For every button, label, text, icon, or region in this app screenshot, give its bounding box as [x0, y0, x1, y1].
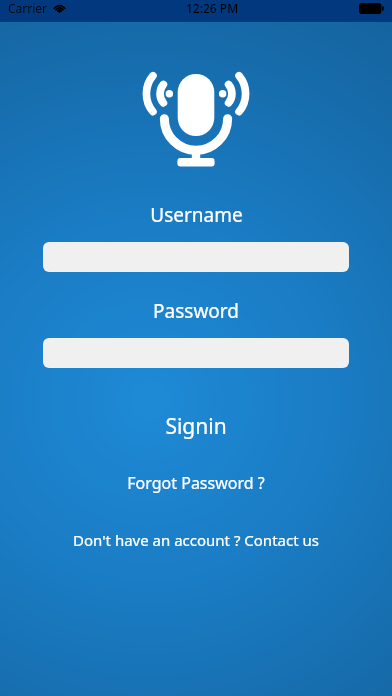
other: App logo [134, 56, 258, 172]
staticText: Username [150, 202, 243, 228]
button[interactable] [43, 242, 349, 272]
button[interactable]: Forgot Password ? [0, 468, 392, 498]
staticText: Password [153, 298, 239, 324]
staticText: Signin [165, 412, 227, 441]
button[interactable]: Signin [0, 408, 392, 445]
staticText: Forgot Password ? [127, 472, 265, 494]
staticText: Don't have an account ? Contact us [73, 530, 319, 550]
button[interactable]: Don't have an account ? Contact us [0, 526, 392, 554]
staticText: Carrier [8, 0, 48, 16]
button[interactable] [43, 338, 349, 368]
staticText: 12:26 PM [186, 0, 239, 16]
